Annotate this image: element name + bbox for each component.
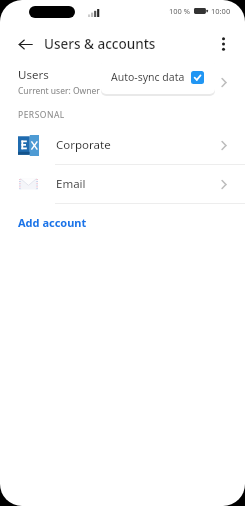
staticText: Auto-sync data (111, 70, 185, 84)
button[interactable]: Corporate (0, 126, 245, 164)
button[interactable]: Email (0, 165, 245, 203)
staticText: Corporate (56, 137, 111, 153)
staticText: Current user: Owner (18, 85, 100, 97)
button[interactable]: Users (0, 60, 245, 104)
staticText: 10:00 (211, 6, 231, 16)
staticText: Users (18, 67, 49, 83)
staticText: 100 % (169, 6, 191, 16)
button[interactable]: Back (11, 30, 39, 58)
button[interactable]: More options (209, 30, 237, 58)
staticText: Email (56, 176, 86, 192)
staticText: PERSONAL (18, 109, 65, 121)
staticText: Users & accounts (44, 35, 156, 53)
button[interactable]: Add account (0, 204, 245, 240)
staticText: Add account (18, 215, 87, 230)
button[interactable]: Auto-sync data (101, 59, 215, 94)
